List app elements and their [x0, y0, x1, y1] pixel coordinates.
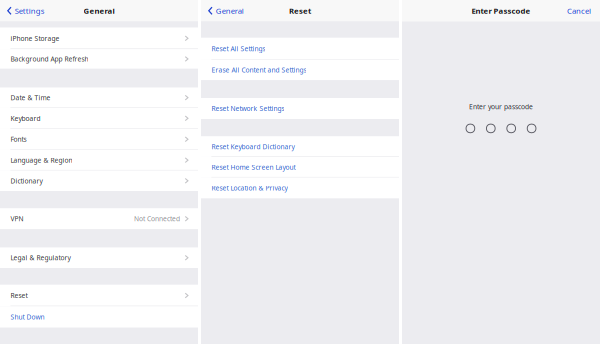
- staticText: iPhone Storage: [10, 34, 59, 43]
- button[interactable]: General: [201, 0, 249, 21]
- button[interactable]: Shut Down: [0, 306, 198, 327]
- staticText: Keyboard: [10, 114, 40, 123]
- button[interactable]: Reset Location & Privacy: [201, 178, 399, 198]
- staticText: Legal & Regulatory: [10, 253, 70, 262]
- staticText: Enter Passcode: [471, 5, 530, 16]
- button[interactable]: Reset Home Screen Layout: [201, 157, 399, 178]
- staticText: Reset All Settings: [211, 44, 265, 53]
- button[interactable]: Reset: [0, 285, 198, 306]
- staticText: General: [83, 5, 114, 16]
- staticText: Reset: [10, 291, 27, 300]
- staticText: Reset Location & Privacy: [211, 183, 287, 192]
- button[interactable]: Language & Region: [0, 150, 198, 171]
- staticText: Erase All Content and Settings: [211, 65, 306, 74]
- staticText: Dictionary: [10, 176, 42, 185]
- button[interactable]: Date & Time: [0, 87, 198, 108]
- staticText: Reset Network Settings: [211, 104, 284, 113]
- button[interactable]: Reset Keyboard Dictionary: [201, 136, 399, 157]
- staticText: Language & Region: [10, 156, 72, 165]
- staticText: Reset Home Screen Layout: [211, 163, 295, 172]
- button[interactable]: Dictionary: [0, 171, 198, 191]
- staticText: Background App Refresh: [10, 54, 88, 63]
- button[interactable]: Erase All Content and Settings: [201, 60, 399, 80]
- staticText: General: [216, 5, 244, 16]
- staticText: Fonts: [10, 135, 26, 144]
- button[interactable]: Reset Network Settings: [201, 98, 399, 119]
- button[interactable]: Keyboard: [0, 108, 198, 129]
- button[interactable]: Reset All Settings: [201, 38, 399, 60]
- button[interactable]: iPhone Storage: [0, 27, 198, 49]
- staticText: Date & Time: [10, 93, 50, 102]
- staticText: Reset Keyboard Dictionary: [211, 142, 294, 151]
- button[interactable]: Legal & Regulatory: [0, 247, 198, 268]
- button[interactable]: Cancel: [561, 0, 600, 21]
- staticText: Enter your passcode: [469, 102, 533, 111]
- staticText: VPN: [10, 214, 23, 223]
- button[interactable]: Settings: [0, 0, 50, 21]
- staticText: Shut Down: [10, 312, 44, 321]
- staticText: Reset: [289, 5, 311, 16]
- staticText: Settings: [15, 5, 45, 16]
- button[interactable]: Background App Refresh: [0, 49, 198, 69]
- staticText: Not Connected: [134, 214, 180, 223]
- staticText: Cancel: [567, 5, 591, 16]
- button[interactable]: Fonts: [0, 129, 198, 150]
- button[interactable]: VPN: [0, 208, 198, 229]
